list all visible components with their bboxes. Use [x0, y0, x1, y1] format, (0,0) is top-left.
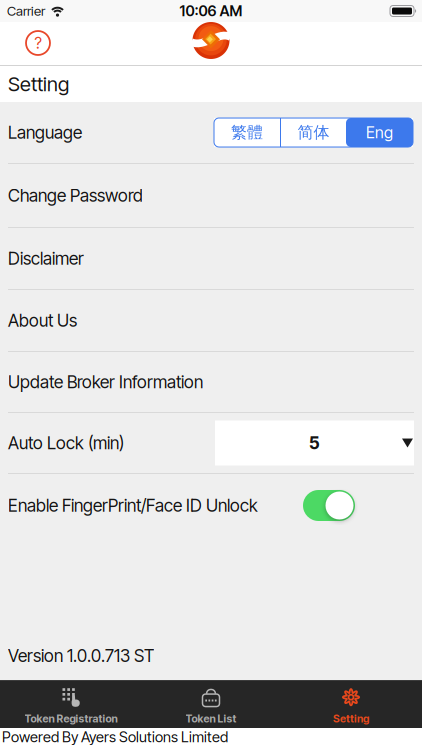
button[interactable]: Auto Lock minutes — [215, 420, 414, 465]
button[interactable]: 简体 — [281, 118, 346, 147]
staticText: 简体 — [297, 123, 329, 142]
staticText: Powered By Ayers Solutions Limited — [2, 728, 228, 746]
button[interactable]: Update Broker Information — [0, 352, 422, 412]
staticText: Auto Lock (min) — [8, 433, 124, 453]
staticText: Language — [8, 122, 82, 143]
button[interactable]: 繁體 — [214, 118, 280, 147]
button[interactable]: Change Password — [0, 164, 422, 227]
staticText: Version 1.0.0.713 ST — [8, 646, 154, 666]
staticText: Setting — [8, 72, 69, 96]
staticText: Disclaimer — [8, 248, 84, 269]
button[interactable]: Eng — [346, 118, 413, 147]
button[interactable]: Enable FingerPrint/Face ID Unlock — [303, 490, 355, 521]
staticText: 10:06 AM — [179, 2, 242, 20]
staticText: Setting — [333, 712, 369, 725]
staticText: Token List — [185, 712, 236, 725]
button[interactable]: Help — [24, 29, 52, 57]
staticText: Eng — [366, 123, 393, 142]
staticText: About Us — [8, 310, 77, 331]
button[interactable]: Token Registration — [1, 680, 141, 728]
button[interactable]: Token List — [141, 680, 281, 728]
staticText: ? — [34, 34, 41, 52]
staticText: Carrier — [7, 3, 45, 19]
button[interactable]: About Us — [0, 290, 422, 351]
staticText: Token Registration — [24, 712, 117, 725]
button[interactable]: Disclaimer — [0, 228, 422, 289]
button[interactable]: Setting — [281, 680, 421, 728]
staticText: 繁體 — [231, 123, 263, 142]
staticText: Change Password — [8, 185, 143, 206]
staticText: 5 — [309, 433, 320, 453]
staticText: Enable FingerPrint/Face ID Unlock — [8, 495, 258, 516]
staticText: Update Broker Information — [8, 372, 203, 392]
